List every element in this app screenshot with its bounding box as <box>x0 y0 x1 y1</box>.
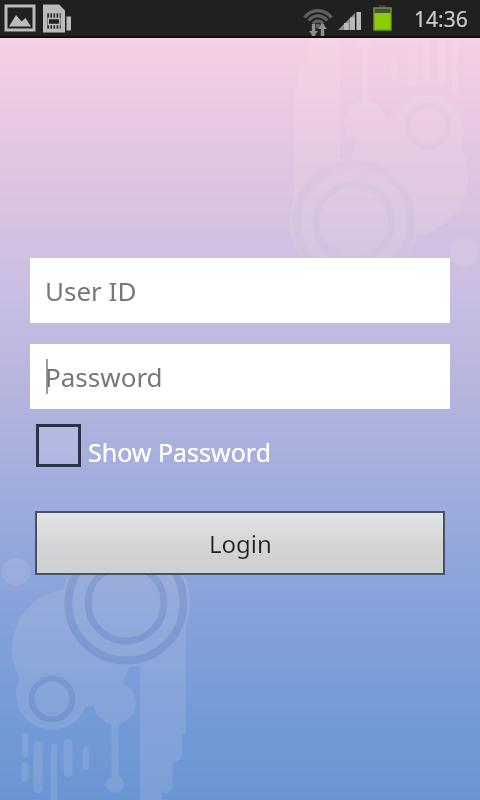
button[interactable]: User ID <box>30 258 450 323</box>
button[interactable]: Password <box>30 344 450 409</box>
staticText: Login <box>209 527 272 560</box>
button[interactable]: Show Password <box>36 424 272 467</box>
staticText: User ID <box>45 273 137 308</box>
staticText: Show Password <box>88 435 272 469</box>
staticText: Password <box>45 359 163 394</box>
button[interactable]: Login <box>36 512 444 574</box>
staticText: 14:36 <box>414 5 468 34</box>
